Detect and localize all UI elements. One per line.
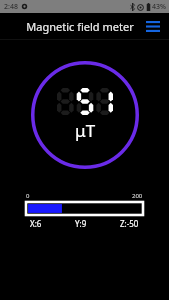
staticText: Magnetic field meter (26, 19, 134, 34)
staticText: 0 (26, 192, 30, 200)
button[interactable]: Menu (143, 16, 163, 36)
staticText: 43% (152, 2, 166, 12)
staticText: Y:9 (75, 218, 87, 229)
staticText: 2:48 (4, 2, 18, 12)
staticText: μT (75, 119, 96, 142)
staticText: Z:-50 (120, 218, 139, 229)
staticText: 200 (132, 192, 143, 200)
button[interactable] (26, 202, 143, 215)
staticText: X:6 (30, 218, 42, 229)
